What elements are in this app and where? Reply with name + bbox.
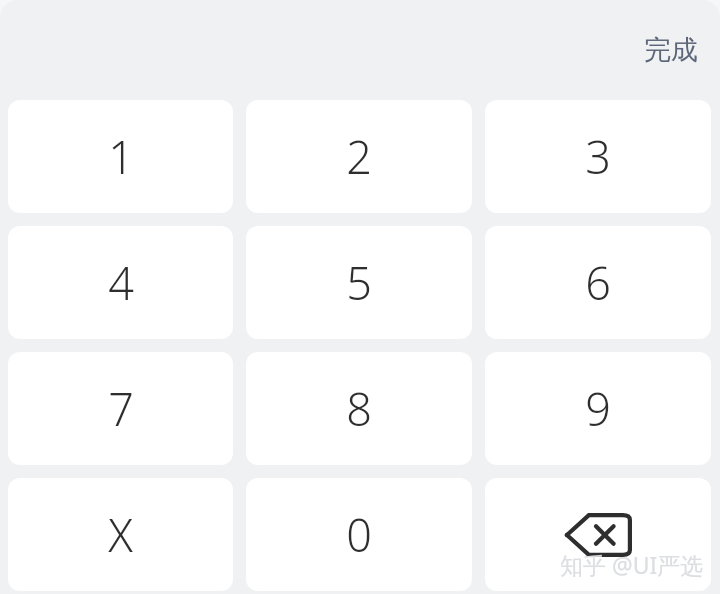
staticText: 0 [346, 504, 372, 565]
button[interactable]: 7 [8, 352, 233, 465]
staticText: 完成 [644, 33, 698, 67]
staticText: 9 [585, 378, 611, 439]
button[interactable]: 3 [485, 100, 711, 213]
button[interactable]: 2 [246, 100, 472, 213]
staticText: 7 [108, 378, 134, 439]
button[interactable]: Backspace [485, 478, 711, 591]
staticText: 8 [346, 378, 372, 439]
button[interactable]: 8 [246, 352, 472, 465]
button[interactable]: 9 [485, 352, 711, 465]
staticText: 6 [585, 252, 611, 313]
staticText: 知乎 @UI严选 [560, 549, 704, 580]
button[interactable]: 6 [485, 226, 711, 339]
staticText: 3 [585, 126, 611, 187]
button[interactable]: 完成 [636, 27, 706, 73]
button[interactable]: 5 [246, 226, 472, 339]
button[interactable]: 4 [8, 226, 233, 339]
button[interactable]: 0 [246, 478, 472, 591]
button[interactable]: X [8, 478, 233, 591]
staticText: 2 [346, 126, 372, 187]
button[interactable]: 1 [8, 100, 233, 213]
staticText: X [108, 504, 133, 565]
staticText: 4 [108, 252, 134, 313]
staticText: 5 [346, 252, 372, 313]
staticText: 1 [108, 126, 134, 187]
